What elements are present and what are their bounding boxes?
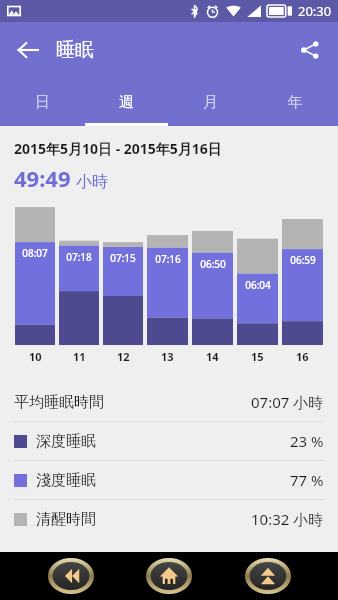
button[interactable]: Back: [6, 28, 50, 72]
staticText: 06:59: [290, 253, 316, 267]
staticText: 平均睡眠時間: [14, 393, 104, 412]
staticText: 淺度睡眠: [36, 471, 96, 490]
button[interactable]: 06:50: [192, 205, 233, 345]
staticText: 12: [117, 349, 130, 364]
staticText: 2015年5月10日 - 2015年5月16日: [14, 139, 222, 158]
staticText: 清醒時間: [36, 510, 96, 529]
staticText: 15: [251, 349, 264, 364]
staticText: 年: [288, 93, 303, 112]
staticText: 77 %: [290, 470, 324, 490]
button[interactable]: 深度睡眠: [0, 422, 338, 460]
staticText: 週: [119, 93, 134, 112]
button[interactable]: 日: [0, 78, 84, 126]
button[interactable]: 年: [253, 78, 338, 126]
button[interactable]: 淺度睡眠: [0, 461, 338, 499]
staticText: 月: [203, 93, 218, 112]
staticText: 07:15: [110, 251, 136, 265]
button[interactable]: Recent apps: [240, 556, 296, 596]
button[interactable]: 清醒時間: [0, 500, 338, 538]
button[interactable]: 06:59: [282, 205, 323, 345]
staticText: 11: [73, 349, 86, 364]
staticText: 49:49: [14, 163, 71, 193]
staticText: 日: [35, 93, 50, 112]
staticText: 07:16: [155, 252, 181, 266]
staticText: 10: [29, 349, 42, 364]
button[interactable]: 06:04: [237, 205, 278, 345]
staticText: 13: [161, 349, 174, 364]
button[interactable]: 07:15: [103, 205, 143, 345]
staticText: 06:50: [200, 257, 226, 271]
staticText: 06:04: [245, 278, 271, 292]
button[interactable]: 月: [168, 78, 253, 126]
button[interactable]: Share: [288, 28, 332, 72]
staticText: 睡眠: [56, 38, 94, 62]
staticText: 23 %: [290, 431, 324, 451]
staticText: 16: [296, 349, 309, 364]
button[interactable]: 07:18: [59, 205, 99, 345]
button[interactable]: 平均睡眠時間: [0, 383, 338, 421]
staticText: 深度睡眠: [36, 432, 96, 451]
staticText: 08:07: [22, 246, 48, 260]
button[interactable]: Home: [141, 556, 197, 596]
staticText: 07:18: [66, 250, 92, 264]
staticText: 小時: [76, 172, 108, 192]
button[interactable]: Back: [43, 556, 99, 596]
staticText: 14: [206, 349, 219, 364]
staticText: 10:32 小時: [251, 509, 324, 529]
staticText: 07:07 小時: [251, 392, 324, 412]
staticText: 20:30: [298, 2, 332, 20]
button[interactable]: 07:16: [147, 205, 188, 345]
button[interactable]: 08:07: [15, 205, 55, 345]
button[interactable]: 週: [84, 78, 168, 126]
